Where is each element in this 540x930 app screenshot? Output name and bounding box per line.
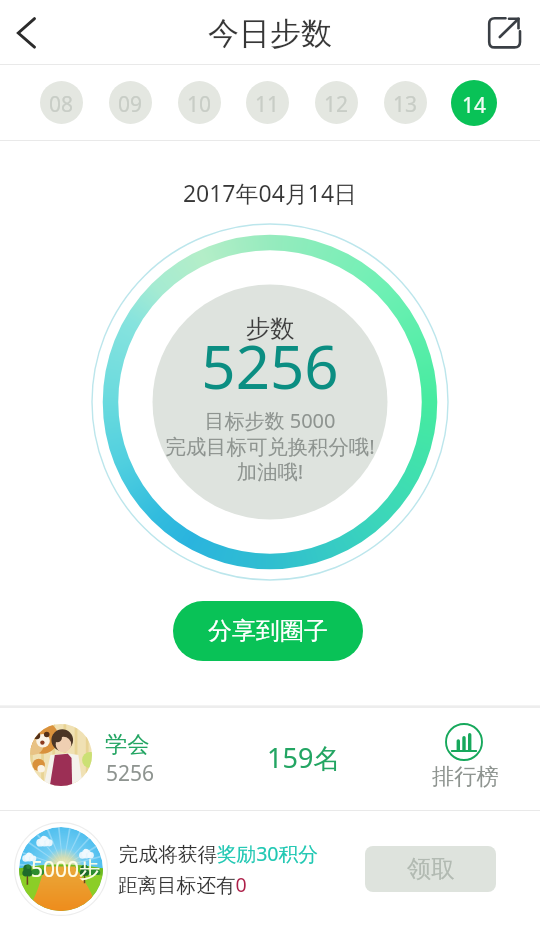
staticText: 159名 xyxy=(267,739,341,776)
staticText: 12 xyxy=(324,90,349,119)
button[interactable]: 09 xyxy=(109,81,152,124)
staticText: 领取 xyxy=(407,854,455,884)
staticText: 分享到圈子 xyxy=(208,616,328,646)
staticText: 11 xyxy=(255,90,280,119)
staticText: 09 xyxy=(118,90,143,119)
staticText: 14 xyxy=(462,91,487,120)
button[interactable]: 领取 xyxy=(365,846,496,892)
staticText: 学会 xyxy=(105,731,150,759)
button[interactable]: Share xyxy=(484,8,528,52)
staticText: 距离目标还有0 xyxy=(118,871,247,898)
staticText: 完成目标可兑换积分哦! xyxy=(0,432,540,460)
staticText: 步数 xyxy=(0,313,540,344)
staticText: 5256 xyxy=(106,759,155,788)
staticText: 排行榜 xyxy=(432,763,499,791)
button[interactable]: 分享到圈子 xyxy=(173,601,363,661)
button[interactable]: 11 xyxy=(246,81,289,124)
staticText: 目标步数 5000 xyxy=(0,407,540,434)
staticText: 今日步数 xyxy=(0,14,540,53)
staticText: 加油哦! xyxy=(0,457,540,485)
button[interactable]: 14 xyxy=(451,80,497,126)
staticText: 5256 xyxy=(0,325,540,407)
staticText: 13 xyxy=(393,90,418,119)
button[interactable] xyxy=(420,715,506,753)
staticText: 10 xyxy=(187,90,212,119)
button[interactable]: Back xyxy=(2,9,50,57)
button[interactable]: 10 xyxy=(178,81,221,124)
button[interactable] xyxy=(0,708,540,810)
staticText: 08 xyxy=(49,90,74,119)
button[interactable]: 13 xyxy=(384,81,427,124)
button[interactable]: 12 xyxy=(315,81,358,124)
staticText: 完成将获得奖励30积分 xyxy=(119,840,318,867)
staticText: 2017年04月14日 xyxy=(0,177,540,208)
button[interactable]: 08 xyxy=(40,81,83,124)
staticText: 5000步 xyxy=(31,855,101,884)
